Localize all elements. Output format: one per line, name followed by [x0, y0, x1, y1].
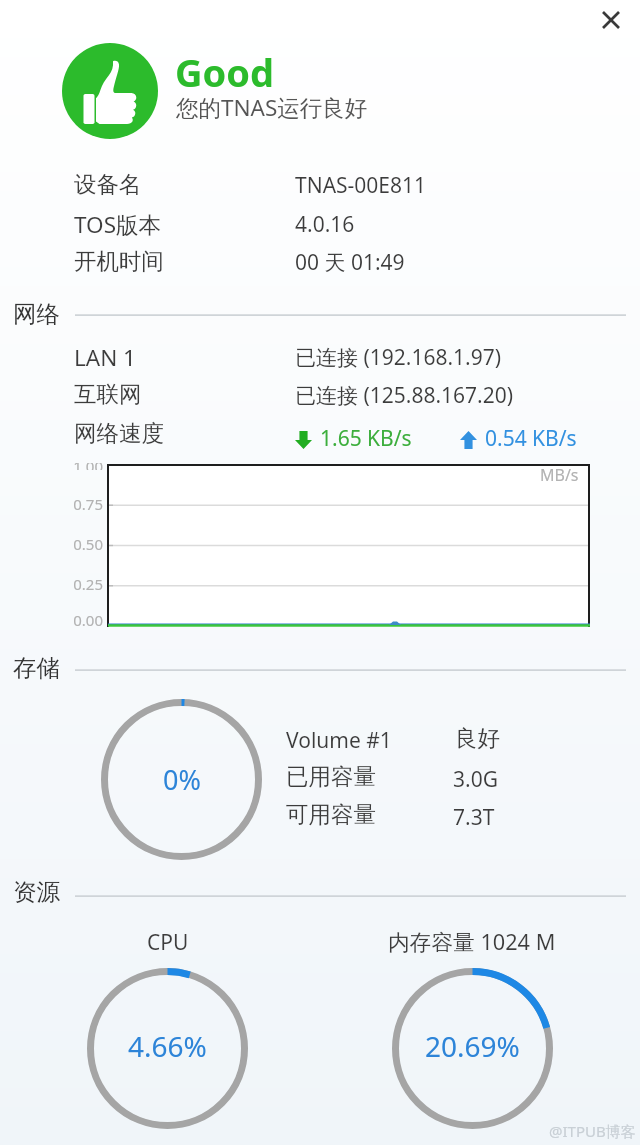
staticText: TNAS-00E811 [295, 171, 427, 200]
staticText: 已连接 (192.168.1.97) [295, 343, 502, 372]
staticText: 7.3T [453, 803, 495, 832]
staticText: TOS版本 [74, 209, 161, 240]
staticText: 存储 [13, 653, 60, 683]
staticText: 您的TNAS运行良好 [176, 92, 368, 123]
staticText: LAN 1 [74, 342, 136, 373]
staticText: 开机时间 [74, 247, 164, 275]
staticText: 已用容量 [286, 762, 376, 790]
button[interactable]: Close [593, 2, 629, 38]
staticText: 00 天 01:49 [295, 248, 405, 277]
staticText: 已连接 (125.88.167.20) [295, 381, 514, 410]
staticText: 网络速度 [74, 419, 164, 447]
staticText: Volume #1 [286, 726, 392, 755]
staticText: 可用容量 [286, 800, 376, 828]
staticText: @ITPUB博客 [549, 1121, 636, 1141]
staticText: 0.54 KB/s [485, 424, 577, 453]
staticText: 设备名 [74, 170, 142, 198]
staticText: 互联网 [74, 380, 142, 408]
staticText: 0.75 [62, 494, 103, 514]
staticText: 1.65 KB/s [320, 424, 412, 453]
staticText: MB/s [540, 464, 579, 486]
staticText: 良好 [455, 724, 500, 752]
staticText: Good [175, 46, 275, 98]
staticText: 3.0G [453, 765, 498, 794]
staticText: 1.00 [62, 463, 103, 470]
staticText: 0.50 [62, 534, 103, 554]
staticText: 内存容量 1024 M [388, 927, 556, 957]
staticText: 4.66% [128, 1027, 207, 1065]
staticText: CPU [147, 928, 189, 957]
staticText: 20.69% [425, 1027, 520, 1065]
staticText: 网络 [13, 299, 60, 329]
staticText: 资源 [13, 877, 60, 907]
staticText: 4.0.16 [295, 210, 355, 239]
staticText: 0% [163, 761, 201, 798]
staticText: 0.25 [62, 574, 103, 594]
staticText: 0.00 [62, 610, 103, 630]
